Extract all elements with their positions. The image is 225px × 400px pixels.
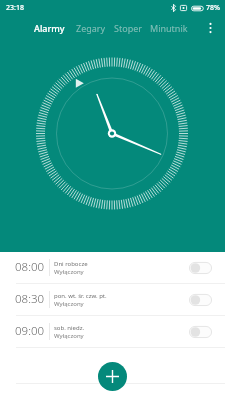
staticText: Wyłączony [54, 300, 84, 308]
button[interactable]: Add alarm [98, 362, 127, 391]
button[interactable]: Alarm on or off [189, 326, 212, 338]
staticText: sob. niedz. [54, 324, 85, 332]
staticText: 78% [206, 3, 220, 13]
staticText: Dni robocze [54, 260, 88, 268]
staticText: Zegary [76, 22, 106, 34]
button[interactable]: 08:30 [0, 284, 225, 315]
staticText: Stoper [114, 22, 142, 34]
staticText: 08:30 [15, 291, 45, 307]
staticText: Wyłączony [54, 332, 84, 340]
staticText: Wyłączony [54, 268, 84, 276]
staticText: pon. wt. śr. czw. pt. [54, 292, 107, 300]
staticText: Alarmy [34, 22, 65, 34]
button[interactable]: Alarmy [34, 17, 65, 39]
button[interactable]: 08:00 [0, 252, 225, 283]
button[interactable]: More options [199, 17, 221, 39]
button[interactable]: Stoper [114, 17, 142, 39]
button[interactable]: Alarm on or off [189, 294, 212, 306]
staticText: 23:18 [6, 3, 24, 13]
staticText: 09:00 [15, 323, 45, 339]
button[interactable]: Alarm on or off [189, 262, 212, 274]
staticText: 08:00 [15, 259, 45, 275]
button[interactable]: Minutnik [150, 17, 188, 39]
button[interactable]: 09:00 [0, 316, 225, 347]
staticText: Minutnik [150, 22, 188, 34]
button[interactable]: Zegary [76, 17, 106, 39]
